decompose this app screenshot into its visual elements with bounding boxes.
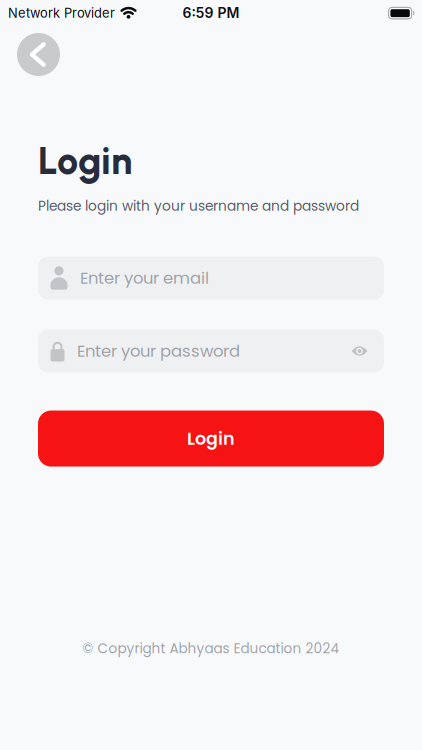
staticText: Please login with your username and pass…: [38, 196, 359, 216]
staticText: Enter your email: [80, 267, 209, 290]
button[interactable]: Login: [38, 410, 384, 466]
button[interactable]: Enter your email: [38, 256, 384, 299]
button[interactable]: Back: [17, 33, 60, 76]
button[interactable]: Enter your password: [38, 329, 384, 372]
staticText: © Copyright Abhyaas Education 2024: [82, 639, 339, 658]
staticText: Login: [187, 426, 235, 451]
staticText: 6:59 PM: [182, 4, 239, 21]
staticText: Login: [38, 138, 132, 183]
staticText: Enter your password: [77, 340, 240, 363]
staticText: Network Provider: [8, 5, 115, 21]
button[interactable]: Show password: [343, 337, 376, 365]
